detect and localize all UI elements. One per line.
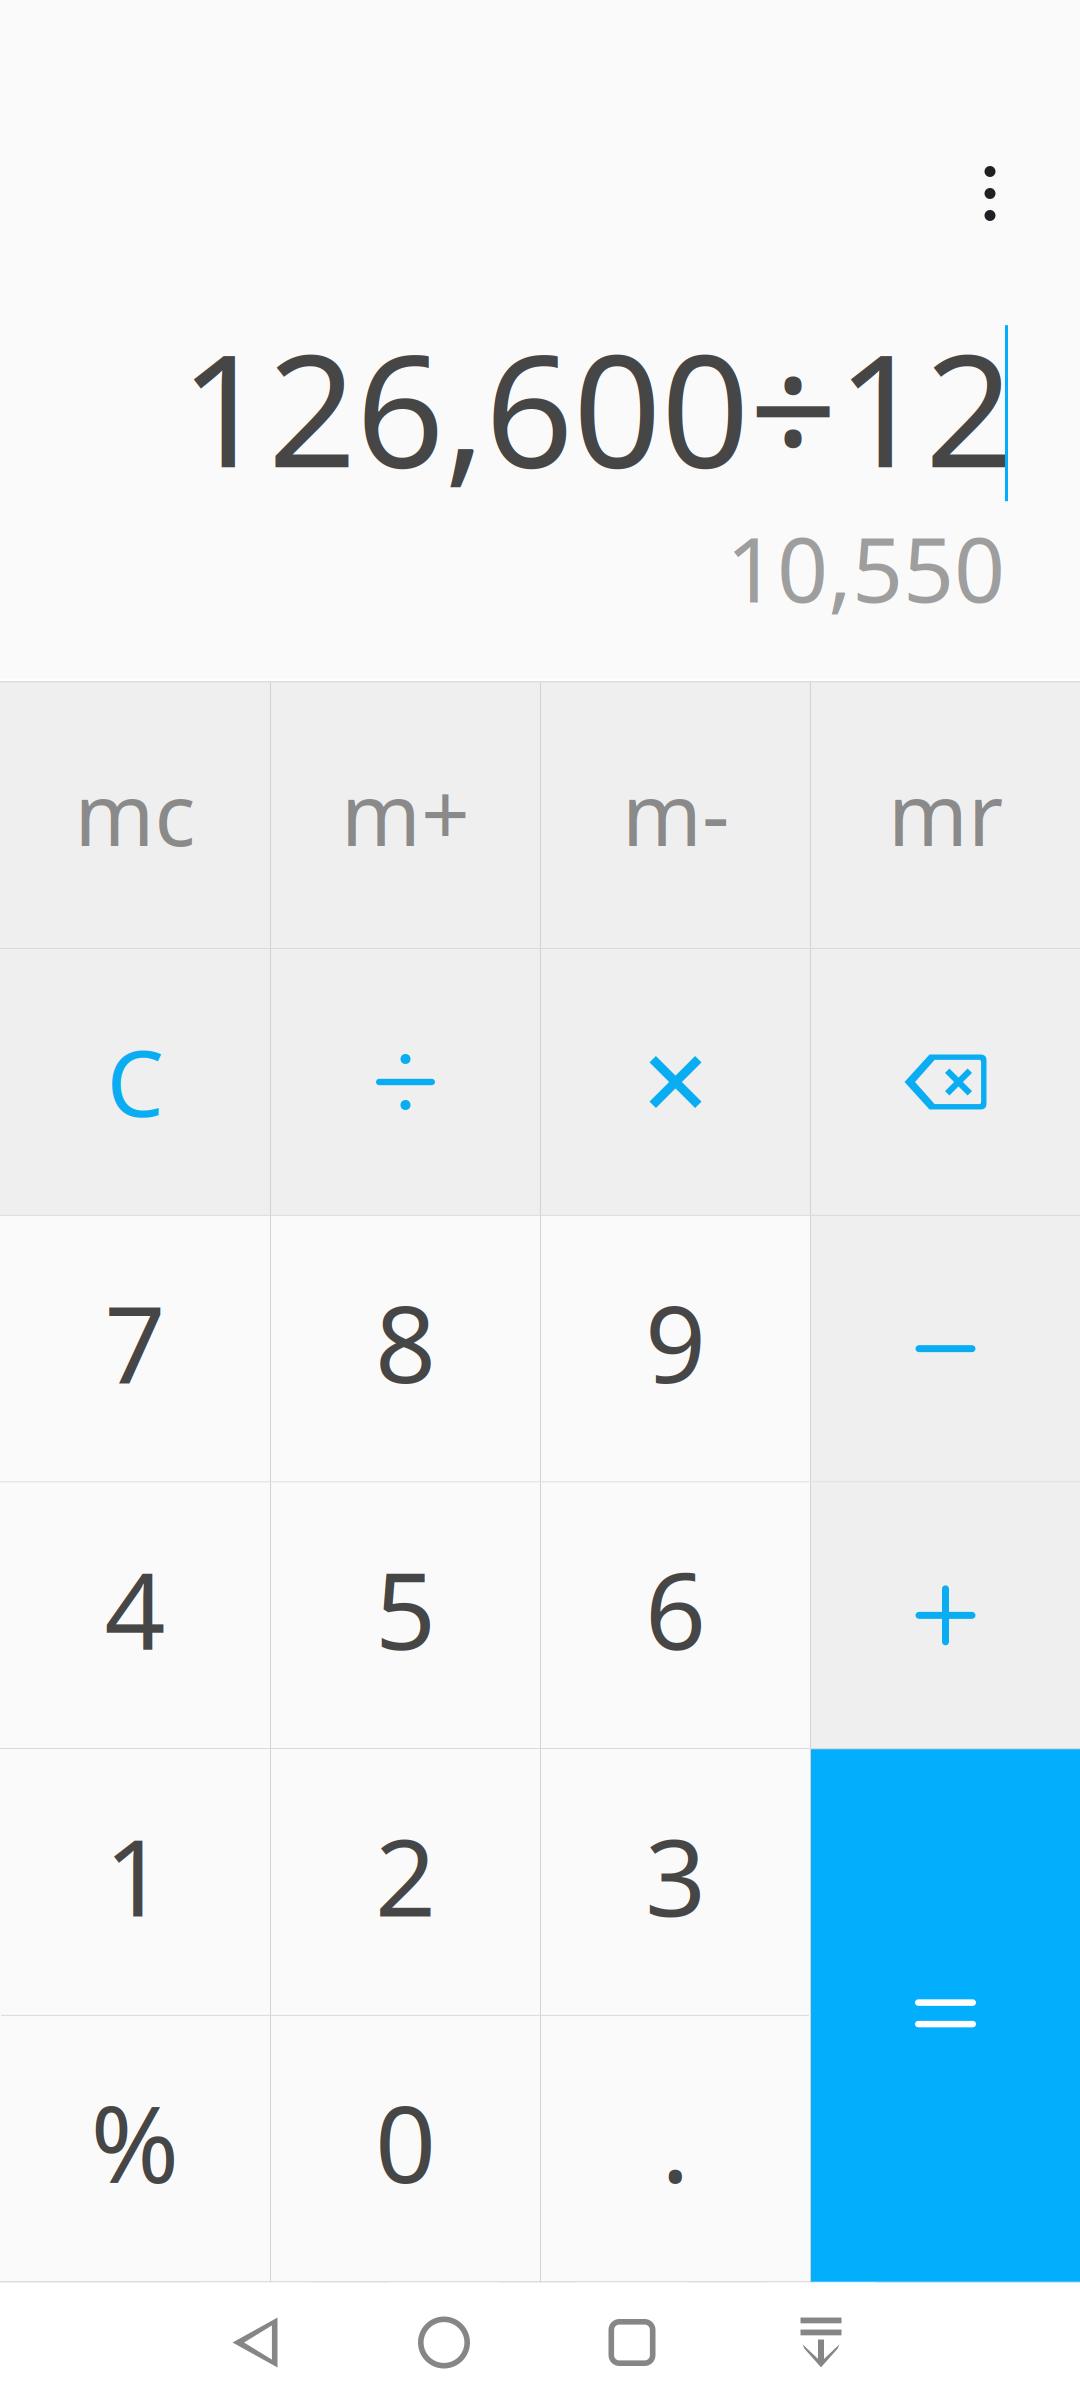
staticText: % (90, 2071, 179, 2212)
staticText: . (661, 2071, 690, 2212)
button[interactable]: Divide (271, 949, 540, 1215)
staticText: 8 (375, 1271, 436, 1412)
staticText: 1 (104, 1804, 165, 1946)
staticText: 3 (645, 1804, 706, 1946)
button[interactable]: 7 (0, 1216, 270, 1481)
staticText: 2 (375, 1804, 436, 1946)
staticText: 7 (104, 1271, 165, 1412)
button[interactable]: Back (200, 2282, 310, 2400)
staticText: C (106, 1021, 163, 1142)
staticText: m- (622, 756, 729, 869)
button[interactable]: Home (389, 2282, 499, 2400)
staticText: 4 (104, 1537, 165, 1679)
button[interactable]: 0 (271, 2016, 540, 2281)
staticText: 0 (375, 2071, 436, 2212)
button[interactable]: 4 (0, 1482, 270, 1748)
button[interactable]: mr (811, 682, 1080, 948)
button[interactable]: 8 (271, 1216, 540, 1481)
staticText: 9 (645, 1271, 706, 1412)
staticText: 6 (645, 1537, 706, 1679)
button[interactable]: 2 (271, 1749, 540, 2015)
staticText: 10,550 (726, 508, 1005, 627)
staticText: mc (74, 756, 195, 869)
button[interactable]: Recent apps (577, 2282, 687, 2400)
button[interactable]: . (541, 2016, 810, 2281)
button[interactable]: % (0, 2016, 270, 2281)
button[interactable]: 1 (0, 1749, 270, 2015)
staticText: 126,600÷12 (180, 304, 1013, 510)
button[interactable]: Plus (811, 1482, 1080, 1748)
button[interactable]: More options (932, 135, 1048, 251)
staticText: 5 (375, 1537, 436, 1679)
staticText: mr (888, 756, 1003, 869)
staticText: m+ (341, 756, 470, 869)
button[interactable]: Backspace (811, 949, 1080, 1215)
button[interactable]: m- (541, 682, 810, 948)
button[interactable]: 5 (271, 1482, 540, 1748)
button[interactable]: Multiply (541, 949, 810, 1215)
button[interactable]: 6 (541, 1482, 810, 1748)
button[interactable]: C (0, 949, 270, 1215)
button[interactable]: Hide keyboard (766, 2282, 876, 2400)
button[interactable]: Equals (811, 1749, 1080, 2281)
button[interactable]: mc (0, 682, 270, 948)
button[interactable]: m+ (271, 682, 540, 948)
button[interactable]: 9 (541, 1216, 810, 1481)
button[interactable]: 3 (541, 1749, 810, 2015)
button[interactable]: Minus (811, 1216, 1080, 1481)
